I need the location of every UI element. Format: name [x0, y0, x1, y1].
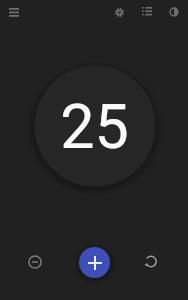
staticText: 25: [60, 91, 129, 162]
button[interactable]: Reset timer: [140, 251, 161, 272]
button[interactable]: Presets: [135, 0, 159, 23]
button[interactable]: Toggle theme: [162, 0, 186, 24]
button[interactable]: Decrease: [23, 250, 47, 274]
button[interactable]: Settings: [107, 0, 131, 24]
button[interactable]: 25: [35, 66, 156, 187]
button[interactable]: Open navigation menu: [2, 0, 26, 24]
button[interactable]: Add time: [79, 247, 110, 278]
